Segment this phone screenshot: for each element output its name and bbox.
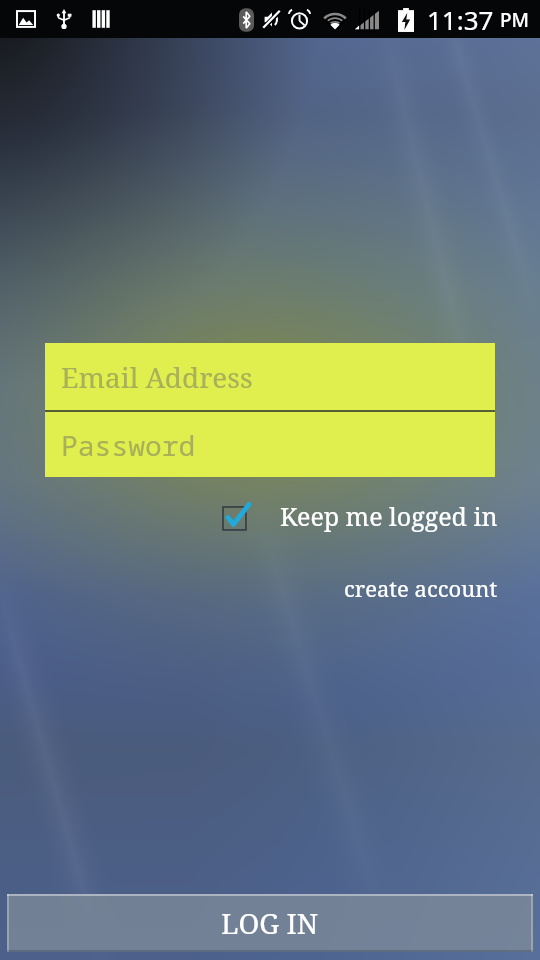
button[interactable]: create account (324, 541, 540, 611)
staticText: PM (500, 7, 530, 33)
staticText: 11:37 (427, 2, 494, 37)
staticText: Password (61, 426, 196, 464)
button[interactable]: LOG IN (7, 894, 533, 952)
button[interactable]: Keep me logged in checkbox (207, 494, 251, 538)
staticText: create account (344, 573, 498, 603)
staticText: LOG IN (221, 904, 319, 942)
button[interactable]: Email Address (45, 343, 495, 410)
staticText: Email Address (61, 358, 253, 396)
button[interactable]: Password (45, 412, 495, 477)
staticText: Keep me logged in (280, 499, 498, 533)
